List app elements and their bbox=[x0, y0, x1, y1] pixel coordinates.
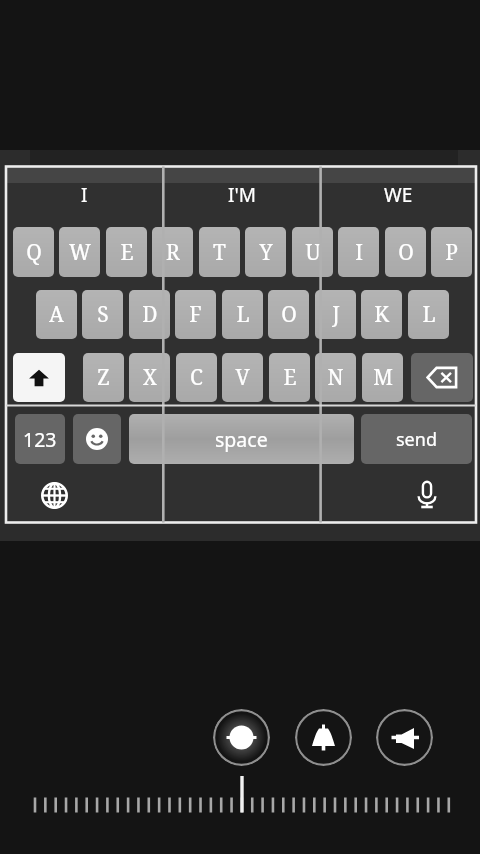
staticText: O bbox=[281, 300, 297, 329]
staticText: Q bbox=[26, 238, 42, 267]
button[interactable]: D bbox=[129, 290, 170, 339]
staticText: R bbox=[166, 238, 180, 267]
button[interactable]: F bbox=[175, 290, 216, 339]
staticText: D bbox=[142, 300, 158, 329]
staticText: U bbox=[305, 238, 321, 267]
staticText: K bbox=[374, 300, 389, 329]
button[interactable]: Emoji bbox=[73, 414, 121, 464]
staticText: L bbox=[236, 300, 250, 329]
button[interactable]: A bbox=[36, 290, 77, 339]
staticText: M bbox=[373, 363, 393, 392]
button[interactable]: Q bbox=[13, 227, 54, 277]
button[interactable]: Voice input bbox=[403, 471, 451, 519]
button[interactable]: L bbox=[408, 290, 449, 339]
button[interactable]: I bbox=[338, 227, 379, 277]
button[interactable]: Y bbox=[245, 227, 286, 277]
button[interactable]: Change language bbox=[30, 471, 78, 519]
staticText: I bbox=[355, 238, 363, 267]
staticText: 123 bbox=[23, 426, 57, 453]
staticText: send bbox=[396, 427, 437, 452]
button[interactable]: O bbox=[268, 290, 309, 339]
staticText: T bbox=[213, 238, 226, 267]
staticText: A bbox=[49, 300, 64, 329]
button[interactable]: T bbox=[199, 227, 240, 277]
button[interactable]: S bbox=[82, 290, 123, 339]
button[interactable]: V bbox=[222, 353, 263, 402]
button[interactable]: send bbox=[361, 414, 472, 464]
staticText: WE bbox=[384, 182, 413, 208]
button[interactable]: Brightness bbox=[213, 709, 270, 766]
button[interactable]: L bbox=[222, 290, 263, 339]
staticText: V bbox=[235, 363, 250, 392]
staticText: S bbox=[97, 300, 109, 329]
staticText: space bbox=[215, 426, 268, 453]
button[interactable]: C bbox=[176, 353, 217, 402]
button[interactable]: E bbox=[106, 227, 147, 277]
button[interactable]: P bbox=[431, 227, 472, 277]
button[interactable]: K bbox=[361, 290, 402, 339]
staticText: E bbox=[120, 238, 134, 267]
button[interactable]: Volume bbox=[376, 709, 433, 766]
staticText: O bbox=[398, 238, 414, 267]
staticText: W bbox=[69, 238, 91, 267]
staticText: P bbox=[445, 238, 458, 267]
button[interactable]: I bbox=[6, 182, 163, 208]
staticText: J bbox=[332, 300, 340, 329]
staticText: C bbox=[190, 363, 203, 392]
button[interactable]: Z bbox=[83, 353, 124, 402]
button[interactable]: O bbox=[385, 227, 426, 277]
staticText: Z bbox=[97, 363, 110, 392]
staticText: X bbox=[143, 363, 157, 392]
button[interactable]: I'M bbox=[163, 182, 320, 208]
button[interactable]: E bbox=[269, 353, 310, 402]
staticText: L bbox=[422, 300, 436, 329]
staticText: I bbox=[81, 182, 88, 208]
button[interactable]: N bbox=[315, 353, 356, 402]
button[interactable]: U bbox=[292, 227, 333, 277]
staticText: I'M bbox=[228, 182, 256, 208]
button[interactable]: Backspace bbox=[411, 353, 473, 402]
staticText: N bbox=[327, 363, 344, 392]
button[interactable]: R bbox=[152, 227, 193, 277]
button[interactable]: W bbox=[59, 227, 100, 277]
staticText: E bbox=[283, 363, 297, 392]
button[interactable]: Shift bbox=[13, 353, 65, 402]
button[interactable]: 123 bbox=[15, 414, 65, 464]
button[interactable]: WE bbox=[320, 182, 477, 208]
button[interactable]: space bbox=[129, 414, 354, 464]
button[interactable]: J bbox=[315, 290, 356, 339]
staticText: F bbox=[189, 300, 202, 329]
button[interactable]: M bbox=[362, 353, 403, 402]
button[interactable]: Notifications bbox=[295, 709, 352, 766]
staticText: Y bbox=[259, 238, 273, 267]
button[interactable]: X bbox=[129, 353, 170, 402]
